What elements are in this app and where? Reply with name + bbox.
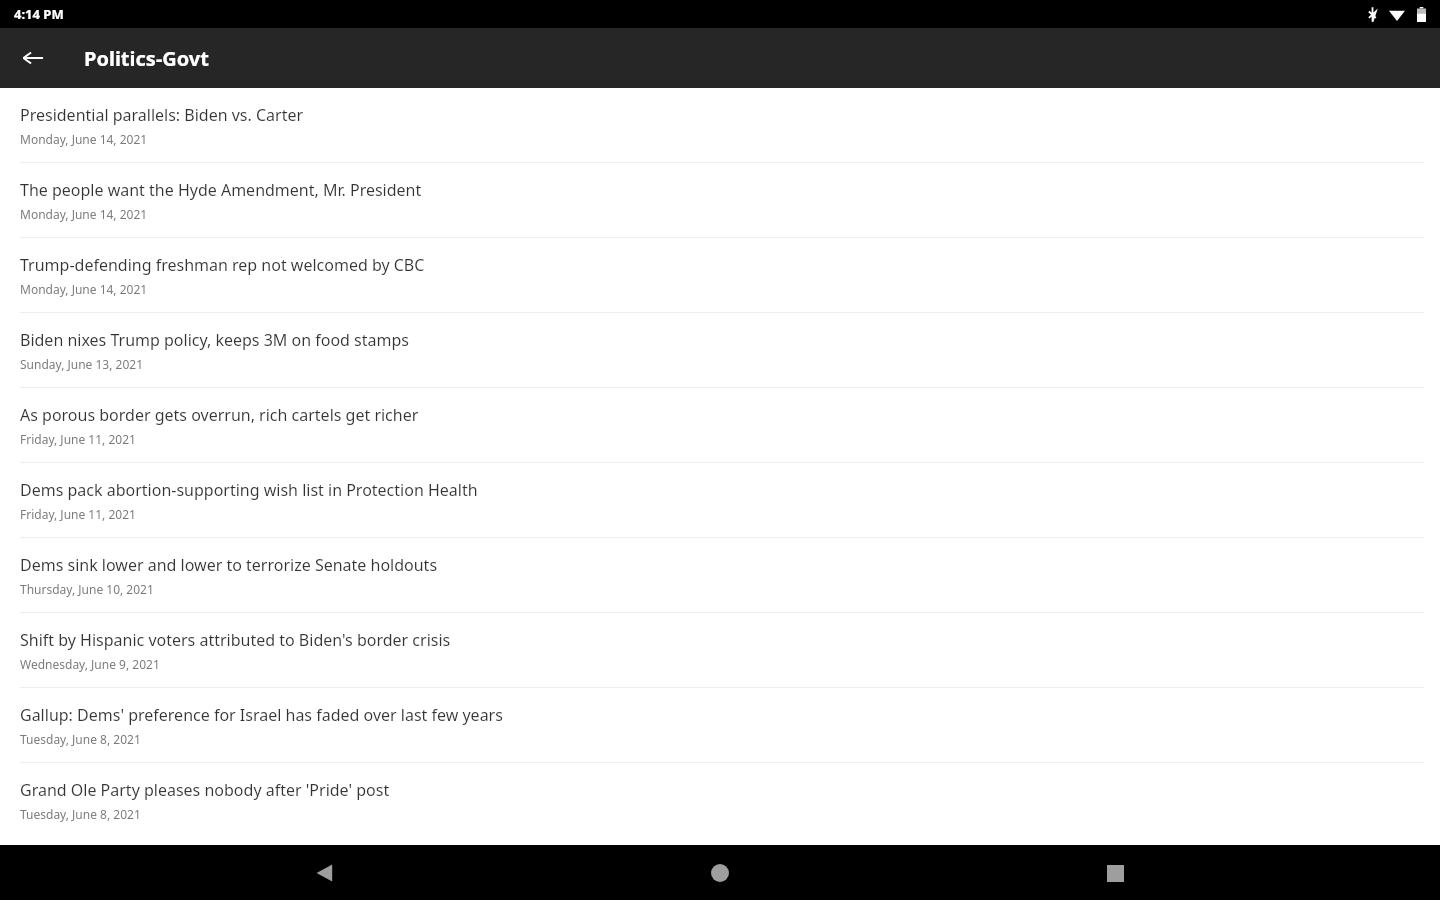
button[interactable]: Back [301,849,349,897]
button[interactable]: As porous border gets overrun, rich cart… [0,388,1440,462]
staticText: Biden nixes Trump policy, keeps 3M on fo… [20,329,409,351]
staticText: Friday, June 11, 2021 [20,506,136,522]
staticText: Monday, June 14, 2021 [20,131,148,147]
button[interactable]: Gallup: Dems' preference for Israel has … [0,688,1440,762]
button[interactable]: Home [696,849,744,897]
staticText: Thursday, June 10, 2021 [20,581,154,597]
staticText: Grand Ole Party pleases nobody after 'Pr… [20,779,390,801]
staticText: Politics-Govt [84,45,209,72]
button[interactable]: Biden nixes Trump policy, keeps 3M on fo… [0,313,1440,387]
staticText: Shift by Hispanic voters attributed to B… [20,629,451,651]
button[interactable]: Trump-defending freshman rep not welcome… [0,238,1440,312]
staticText: The people want the Hyde Amendment, Mr. … [20,179,422,201]
button[interactable]: Grand Ole Party pleases nobody after 'Pr… [0,763,1440,837]
button[interactable]: Dems pack abortion-supporting wish list … [0,463,1440,537]
staticText: Trump-defending freshman rep not welcome… [20,254,425,276]
staticText: Sunday, June 13, 2021 [20,356,144,372]
staticText: Gallup: Dems' preference for Israel has … [20,704,503,726]
button[interactable]: Dems sink lower and lower to terrorize S… [0,538,1440,612]
staticText: Dems sink lower and lower to terrorize S… [20,554,438,576]
staticText: Wednesday, June 9, 2021 [20,656,160,672]
button[interactable]: Recent apps [1091,849,1139,897]
staticText: Dems pack abortion-supporting wish list … [20,479,478,501]
staticText: Presidential parallels: Biden vs. Carter [20,104,304,126]
staticText: Friday, June 11, 2021 [20,431,136,447]
button[interactable]: Back [9,34,57,82]
staticText: 4:14 PM [14,5,64,23]
staticText: Monday, June 14, 2021 [20,281,148,297]
button[interactable]: Presidential parallels: Biden vs. Carter [0,88,1440,162]
staticText: Tuesday, June 8, 2021 [20,731,141,747]
button[interactable]: The people want the Hyde Amendment, Mr. … [0,163,1440,237]
staticText: Monday, June 14, 2021 [20,206,148,222]
staticText: As porous border gets overrun, rich cart… [20,404,419,426]
button[interactable]: Shift by Hispanic voters attributed to B… [0,613,1440,687]
staticText: Tuesday, June 8, 2021 [20,806,141,822]
